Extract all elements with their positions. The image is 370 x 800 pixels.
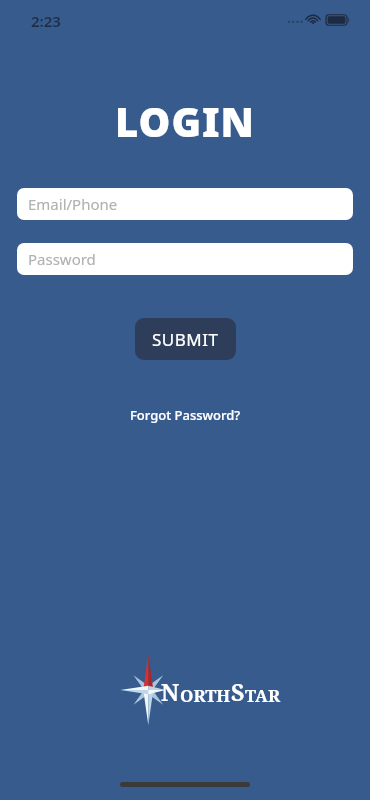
staticText: N — [161, 676, 180, 707]
staticText: Forgot Password? — [130, 406, 241, 424]
button[interactable]: Email/Phone — [17, 188, 353, 220]
staticText: ORTH — [180, 684, 231, 707]
staticText: Email/Phone — [28, 194, 118, 214]
staticText: Password — [28, 249, 96, 269]
button[interactable]: Password — [17, 243, 353, 275]
staticText: LOGIN — [115, 94, 255, 148]
staticText: S — [231, 676, 245, 707]
button[interactable]: SUBMIT — [135, 318, 236, 360]
staticText: TAR — [245, 684, 280, 707]
staticText: SUBMIT — [152, 328, 219, 351]
button[interactable]: Forgot Password? — [124, 402, 247, 428]
staticText: 2:23 — [31, 11, 61, 31]
